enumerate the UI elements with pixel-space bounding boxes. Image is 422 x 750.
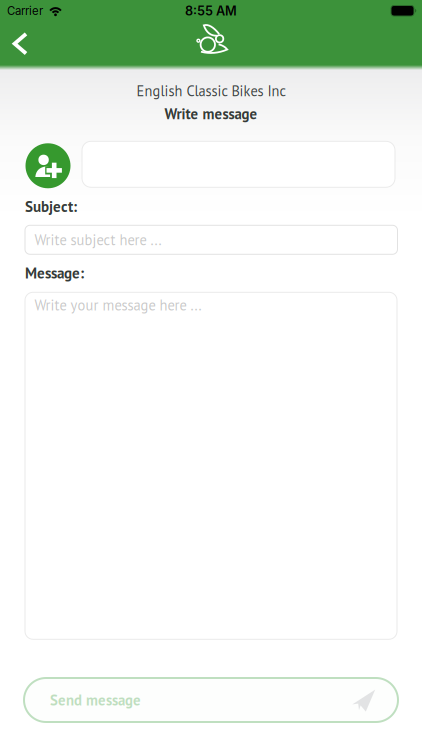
staticText: Write your message here ... bbox=[34, 296, 201, 315]
staticText: Write subject here ... bbox=[34, 230, 161, 249]
staticText: Message: bbox=[25, 263, 84, 283]
button[interactable]: Add recipient bbox=[25, 142, 70, 187]
staticText: Subject: bbox=[25, 197, 77, 216]
button[interactable]: Back bbox=[0, 21, 29, 63]
button[interactable]: Send message bbox=[0, 678, 422, 722]
staticText: Write message bbox=[164, 104, 257, 123]
staticText: Carrier bbox=[7, 4, 43, 18]
staticText: 8:55 AM bbox=[185, 3, 237, 19]
staticText: English Classic Bikes Inc bbox=[136, 81, 285, 100]
button[interactable]: Write subject here ... bbox=[0, 225, 422, 254]
staticText: Send message bbox=[50, 690, 141, 710]
